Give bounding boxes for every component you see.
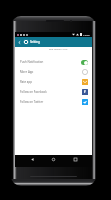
staticText: f	[84, 89, 86, 95]
button[interactable]: Back	[28, 155, 37, 164]
staticText: Push Notification	[20, 60, 44, 64]
button[interactable]: Back	[16, 39, 22, 45]
staticText: Setting	[30, 40, 40, 44]
staticText: Follow on Twitter	[20, 100, 44, 104]
button[interactable]: Recents	[71, 155, 80, 164]
button[interactable]: Push Notification	[15, 57, 92, 67]
button[interactable]: Follow on Facebook	[15, 87, 92, 97]
staticText: Rate app	[20, 80, 33, 84]
staticText: Follow on Facebook	[20, 90, 47, 94]
button[interactable]: More App	[15, 67, 92, 77]
button[interactable]: Rate app	[15, 77, 92, 87]
staticText: More App	[20, 70, 34, 74]
button[interactable]: Follow on Twitter	[15, 97, 92, 107]
staticText: app version 4.0.0	[49, 48, 68, 51]
staticText: 12:30	[83, 33, 90, 36]
button[interactable]: Home	[49, 155, 58, 164]
